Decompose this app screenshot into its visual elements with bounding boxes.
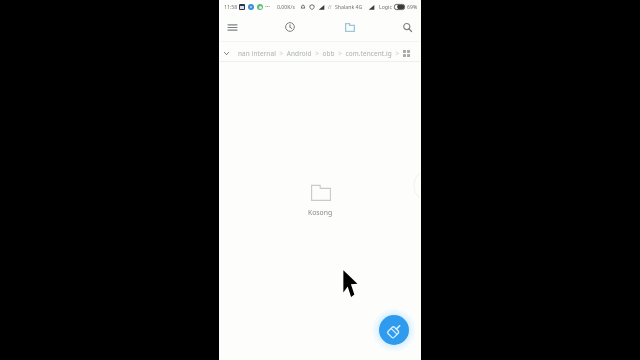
staticText: nan internal > Android > obb > com.tence… <box>238 49 400 58</box>
button[interactable]: Change view <box>397 44 415 62</box>
staticText: 69% <box>407 3 418 10</box>
button[interactable]: Search <box>396 16 418 38</box>
staticText: 0,00K/s <box>277 3 295 10</box>
staticText: // <box>328 4 332 10</box>
button[interactable]: Collapse path <box>217 44 235 62</box>
staticText: Logic <box>379 3 392 10</box>
button[interactable]: Recent <box>279 16 301 38</box>
button[interactable]: Menu <box>221 16 243 38</box>
staticText: ••• <box>265 4 270 10</box>
staticText: Kosong <box>308 208 333 217</box>
button[interactable]: Files <box>339 16 361 38</box>
button[interactable]: Clean up <box>379 315 409 345</box>
staticText: Shalank 4G <box>335 3 363 10</box>
staticText: 11:58 <box>224 3 238 10</box>
